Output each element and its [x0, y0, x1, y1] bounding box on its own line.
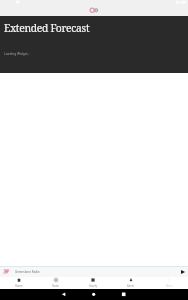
- staticText: More: [166, 284, 173, 288]
- staticText: Home: [15, 284, 23, 288]
- button[interactable]: Play: [179, 268, 187, 276]
- staticText: Alerts: [127, 284, 135, 288]
- button[interactable]: More: [150, 277, 188, 289]
- button[interactable]: Radar: [37, 277, 74, 289]
- button[interactable]: Alerts: [112, 277, 150, 289]
- button[interactable]: Home: [0, 277, 37, 289]
- staticText: Greensboro Radio: [15, 270, 40, 274]
- staticText: Loading Widget...: [4, 52, 31, 56]
- staticText: Radar: [52, 284, 60, 288]
- staticText: Hourly: [89, 284, 98, 288]
- staticText: Extended Forecast: [4, 21, 90, 35]
- button[interactable]: Hourly: [74, 277, 112, 289]
- button[interactable]: Greensboro Radio: [0, 266, 188, 277]
